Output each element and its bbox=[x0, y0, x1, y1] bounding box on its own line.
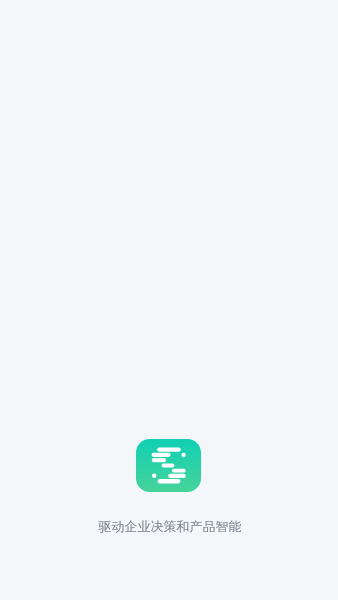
staticText: 驱动企业决策和产品智能 bbox=[1, 518, 338, 600]
other: App logo bbox=[136, 439, 201, 492]
